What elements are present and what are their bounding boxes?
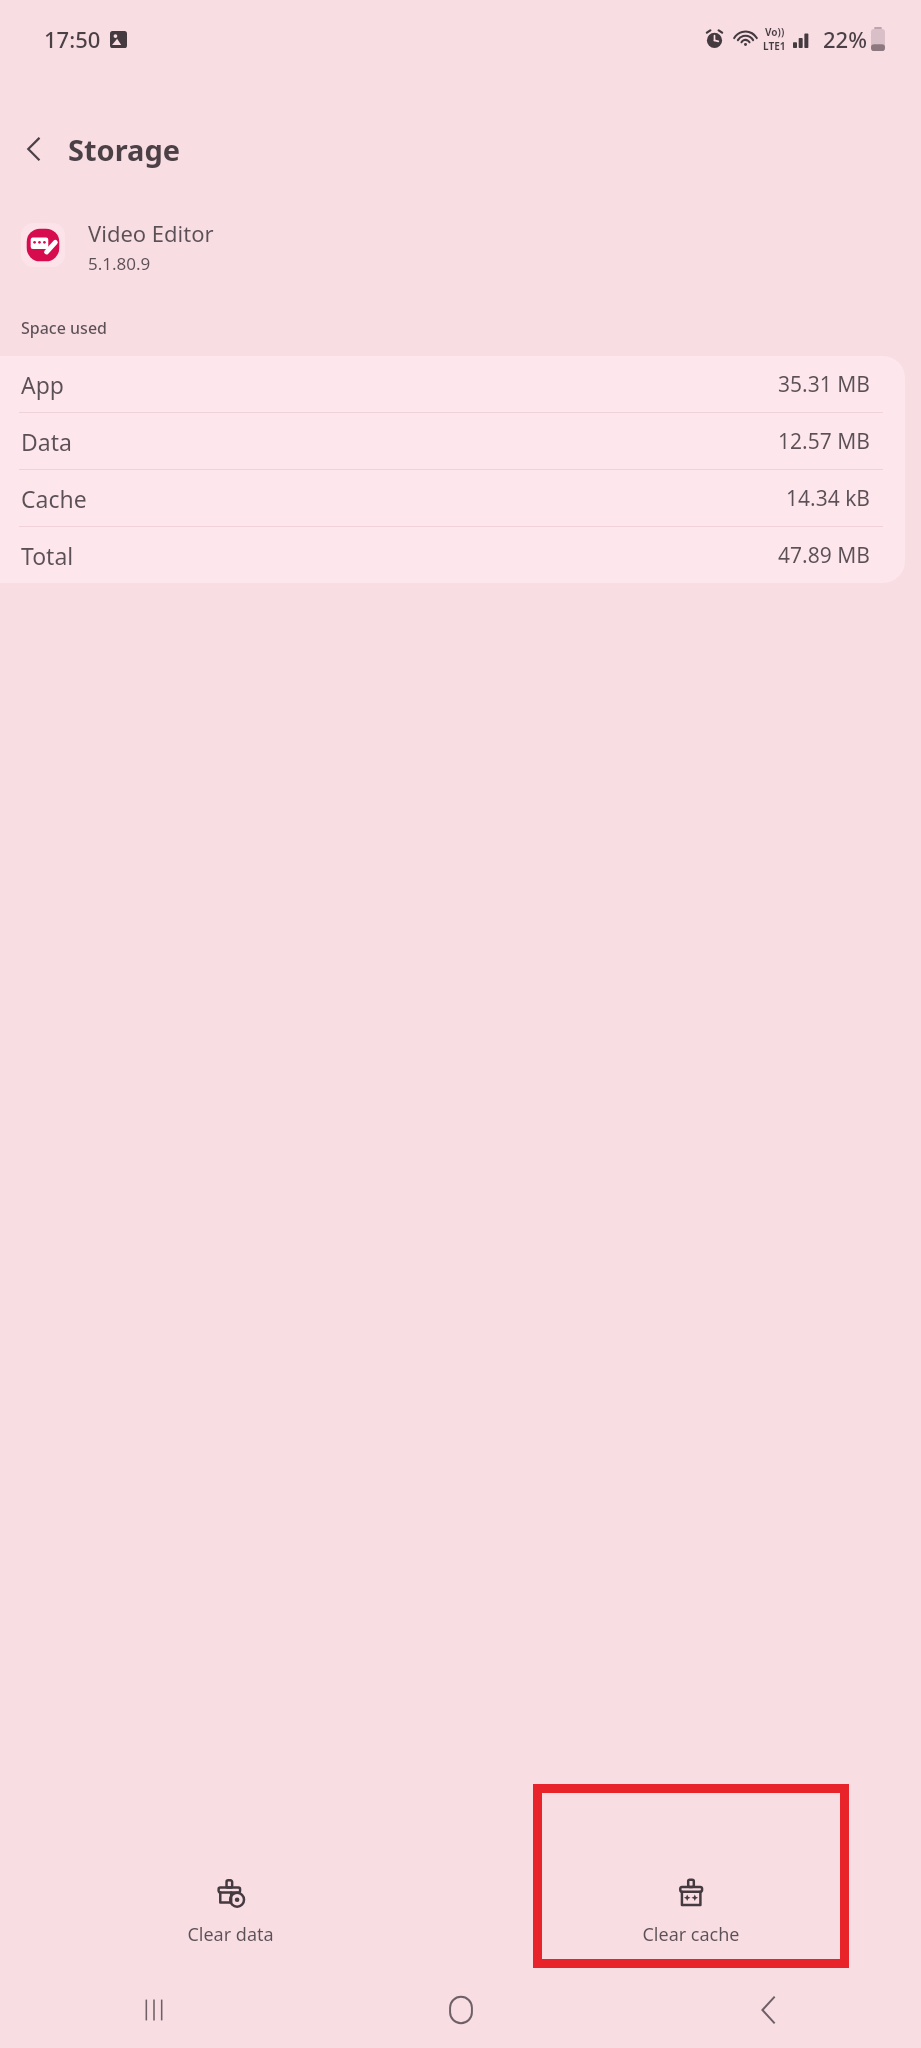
staticText: 35.31 MB — [778, 370, 870, 399]
staticText: Total — [21, 540, 74, 571]
staticText: Clear cache — [642, 1922, 740, 1947]
button[interactable]: Clear cache — [460, 1862, 921, 1962]
button[interactable]: Clear data — [0, 1862, 460, 1962]
staticText: LTE1 — [763, 39, 786, 53]
button[interactable]: Back — [10, 125, 58, 173]
staticText: Space used — [21, 317, 107, 339]
button[interactable]: Data — [0, 413, 905, 469]
staticText: Storage — [68, 130, 181, 169]
button[interactable]: Recents — [0, 1972, 307, 2048]
staticText: 14.34 kB — [786, 484, 870, 513]
staticText: 47.89 MB — [778, 541, 870, 570]
staticText: 17:50 — [44, 24, 101, 54]
button[interactable]: Total — [0, 527, 905, 583]
staticText: Clear data — [187, 1922, 274, 1947]
button[interactable]: Cache — [0, 470, 905, 526]
staticText: Data — [21, 426, 72, 457]
staticText: Vo)) — [765, 25, 785, 39]
staticText: 22% — [823, 24, 867, 54]
staticText: Cache — [21, 483, 87, 514]
staticText: 5.1.80.9 — [88, 252, 151, 272]
button[interactable]: App — [0, 356, 905, 412]
button[interactable]: Back — [614, 1972, 921, 2048]
button[interactable]: Home — [307, 1972, 614, 2048]
staticText: App — [21, 369, 64, 400]
staticText: Video Editor — [88, 218, 214, 248]
staticText: 12.57 MB — [778, 427, 870, 456]
